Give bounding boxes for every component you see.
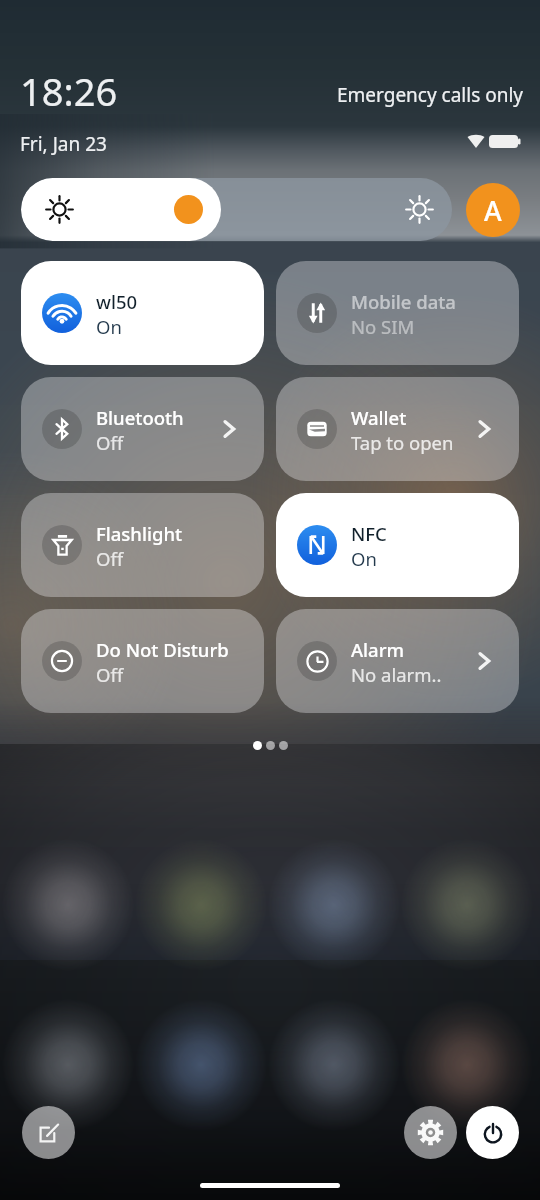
- staticText: Off: [96, 546, 124, 571]
- staticText: On: [96, 314, 122, 339]
- staticText: Tap to open: [351, 430, 454, 455]
- button[interactable]: Brightness: [21, 178, 452, 241]
- staticText: Off: [96, 662, 124, 687]
- staticText: A: [484, 192, 502, 229]
- button[interactable]: Edit: [22, 1106, 75, 1159]
- staticText: wl50: [96, 289, 138, 314]
- button[interactable]: Bluetooth: [21, 377, 264, 481]
- staticText: Emergency calls only: [337, 82, 524, 108]
- staticText: On: [351, 546, 377, 571]
- staticText: NFC: [351, 521, 387, 546]
- staticText: Mobile data: [351, 289, 456, 314]
- button[interactable]: Alarm: [276, 609, 519, 713]
- button[interactable]: NFC: [276, 493, 519, 597]
- staticText: No alarm..: [351, 662, 442, 687]
- button[interactable]: Mobile data: [276, 261, 519, 365]
- button[interactable]: Auto brightness: [466, 183, 520, 237]
- button[interactable]: Wallet: [276, 377, 519, 481]
- staticText: Flashlight: [96, 521, 183, 546]
- button[interactable]: wl50: [21, 261, 264, 365]
- button[interactable]: Flashlight: [21, 493, 264, 597]
- staticText: Off: [96, 430, 124, 455]
- staticText: No SIM: [351, 314, 415, 339]
- staticText: Do Not Disturb: [96, 637, 229, 662]
- button[interactable]: Do Not Disturb: [21, 609, 264, 713]
- staticText: 18:26: [20, 65, 118, 117]
- staticText: Fri, Jan 23: [20, 131, 107, 157]
- button[interactable]: Power: [466, 1106, 519, 1159]
- button[interactable]: Settings: [404, 1106, 457, 1159]
- staticText: Wallet: [351, 405, 407, 430]
- staticText: Alarm: [351, 637, 405, 662]
- staticText: Bluetooth: [96, 405, 184, 430]
